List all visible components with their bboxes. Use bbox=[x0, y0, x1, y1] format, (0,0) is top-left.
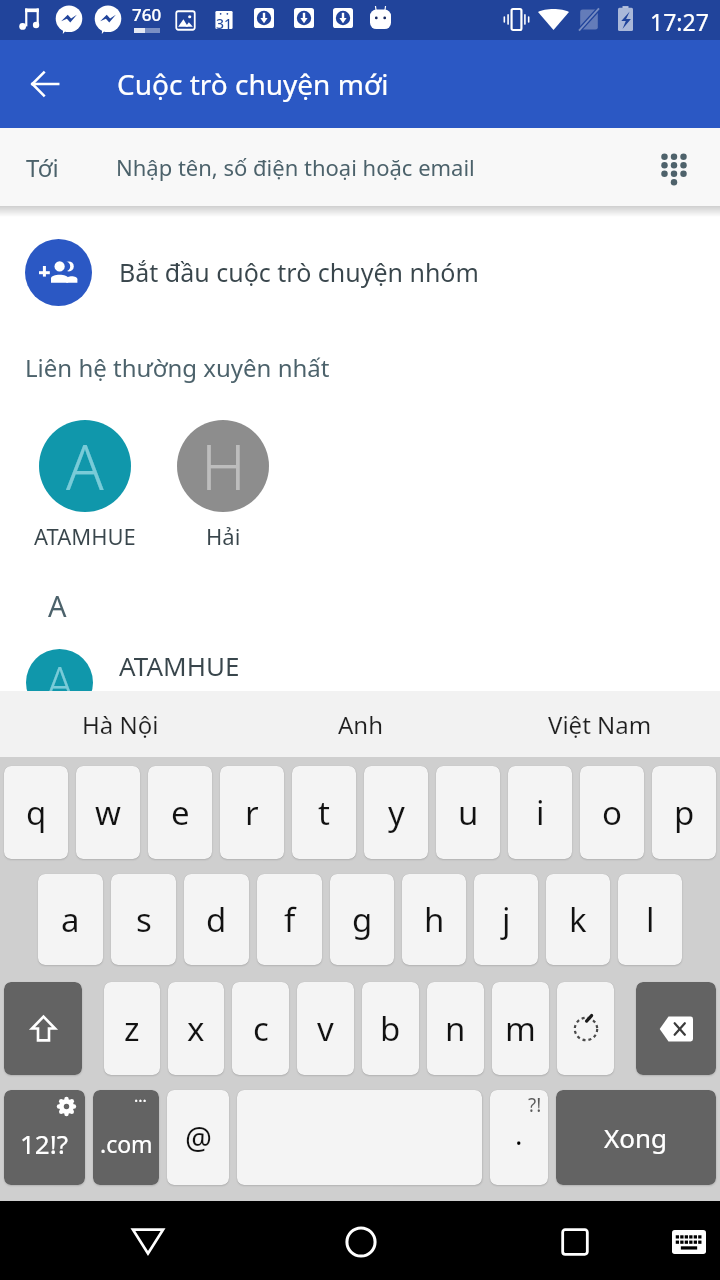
button[interactable]: Accent bbox=[557, 982, 614, 1075]
staticText: Hà Nội bbox=[82, 708, 159, 741]
staticText: .com bbox=[100, 1128, 153, 1159]
staticText: f bbox=[284, 897, 296, 942]
staticText: e bbox=[171, 790, 190, 835]
staticText: Liên hệ thường xuyên nhất bbox=[25, 351, 330, 384]
button[interactable]: o bbox=[580, 766, 644, 859]
button[interactable]: t bbox=[292, 766, 356, 859]
staticText: a bbox=[61, 897, 80, 942]
staticText: Bắt đầu cuộc trò chuyện nhóm bbox=[119, 255, 479, 289]
staticText: Anh bbox=[338, 708, 383, 741]
button[interactable]: s bbox=[111, 874, 176, 965]
staticText: o bbox=[602, 790, 622, 835]
staticText: c bbox=[253, 1006, 269, 1051]
button[interactable]: Done bbox=[556, 1090, 716, 1185]
staticText: Cuộc trò chuyện mới bbox=[117, 65, 389, 103]
button[interactable]: Việt Nam bbox=[480, 691, 720, 757]
button[interactable]: g bbox=[330, 874, 394, 965]
button[interactable]: c bbox=[232, 982, 289, 1075]
button[interactable]: b bbox=[362, 982, 419, 1075]
staticText: @ bbox=[185, 1117, 212, 1158]
staticText: m bbox=[505, 1006, 536, 1051]
staticText: d bbox=[206, 897, 227, 942]
button[interactable]: e bbox=[148, 766, 212, 859]
button[interactable]: H bbox=[177, 420, 269, 551]
button[interactable]: .com bbox=[93, 1090, 159, 1185]
staticText: x bbox=[187, 1006, 205, 1051]
staticText: i bbox=[536, 790, 545, 835]
staticText: b bbox=[380, 1006, 401, 1051]
button[interactable]: h bbox=[402, 874, 466, 965]
staticText: h bbox=[424, 897, 445, 942]
staticText: j bbox=[502, 897, 511, 942]
button[interactable]: Backspace bbox=[636, 982, 716, 1075]
button[interactable]: r bbox=[220, 766, 284, 859]
staticText: Hải bbox=[206, 521, 241, 551]
staticText: k bbox=[569, 897, 587, 942]
staticText: v bbox=[317, 1006, 334, 1051]
button[interactable]: f bbox=[257, 874, 322, 965]
button[interactable]: d bbox=[184, 874, 249, 965]
staticText: Nhập tên, số điện thoại hoặc email bbox=[116, 152, 475, 182]
staticText: y bbox=[388, 790, 405, 835]
staticText: Việt Nam bbox=[548, 708, 652, 741]
button[interactable]: Symbols bbox=[4, 1090, 85, 1185]
staticText: n bbox=[445, 1006, 466, 1051]
button[interactable]: a bbox=[38, 874, 103, 965]
staticText: 17:27 bbox=[650, 6, 709, 37]
staticText: Xong bbox=[604, 1120, 668, 1155]
staticText: ATAMHUE bbox=[34, 521, 136, 551]
button[interactable]: Dialpad bbox=[645, 138, 703, 196]
staticText: . bbox=[515, 1115, 523, 1153]
staticText: r bbox=[245, 790, 259, 835]
button[interactable]: Hà Nội bbox=[0, 691, 240, 757]
button[interactable]: n bbox=[427, 982, 484, 1075]
staticText: z bbox=[124, 1006, 140, 1051]
staticText: ··· bbox=[134, 1090, 147, 1112]
button[interactable]: @ bbox=[167, 1090, 229, 1185]
button[interactable]: Home bbox=[321, 1203, 401, 1280]
button[interactable]: A bbox=[0, 622, 720, 712]
staticText: q bbox=[26, 790, 47, 835]
staticText: 760 bbox=[132, 3, 162, 26]
staticText: g bbox=[352, 897, 373, 942]
button[interactable]: Anh bbox=[240, 691, 480, 757]
button[interactable]: x bbox=[168, 982, 224, 1075]
button[interactable]: i bbox=[508, 766, 572, 859]
button[interactable]: Shift bbox=[4, 982, 82, 1075]
button[interactable]: Back bbox=[16, 55, 74, 113]
staticText: l bbox=[646, 897, 655, 942]
button[interactable]: Show keyboard bbox=[655, 1203, 720, 1280]
staticText: w bbox=[95, 790, 121, 835]
button[interactable]: Recents bbox=[535, 1203, 615, 1280]
button[interactable]: q bbox=[4, 766, 68, 859]
staticText: Tới bbox=[26, 151, 59, 184]
button[interactable]: y bbox=[364, 766, 428, 859]
button[interactable]: m bbox=[492, 982, 549, 1075]
staticText: ATAMHUE bbox=[119, 648, 240, 683]
staticText: t bbox=[318, 790, 330, 835]
button[interactable]: k bbox=[546, 874, 610, 965]
staticText: p bbox=[674, 790, 695, 835]
staticText: H bbox=[201, 424, 246, 508]
staticText: ?! bbox=[528, 1092, 542, 1118]
staticText: s bbox=[136, 897, 152, 942]
button[interactable]: z bbox=[104, 982, 160, 1075]
button[interactable]: w bbox=[76, 766, 140, 859]
staticText: A bbox=[48, 586, 67, 625]
button[interactable]: j bbox=[474, 874, 538, 965]
staticText: A bbox=[66, 424, 104, 508]
button[interactable]: u bbox=[436, 766, 500, 859]
button[interactable]: Back bbox=[108, 1203, 188, 1280]
button[interactable]: A bbox=[34, 420, 136, 551]
button[interactable]: l bbox=[618, 874, 682, 965]
staticText: A bbox=[46, 652, 74, 713]
button[interactable]: p bbox=[652, 766, 716, 859]
button[interactable]: Period bbox=[490, 1090, 548, 1185]
button[interactable]: Bắt đầu cuộc trò chuyện nhóm bbox=[0, 222, 720, 322]
staticText: u bbox=[458, 790, 479, 835]
staticText: 31 bbox=[216, 14, 233, 33]
staticText: 12!? bbox=[20, 1126, 69, 1161]
button[interactable]: v bbox=[297, 982, 354, 1075]
